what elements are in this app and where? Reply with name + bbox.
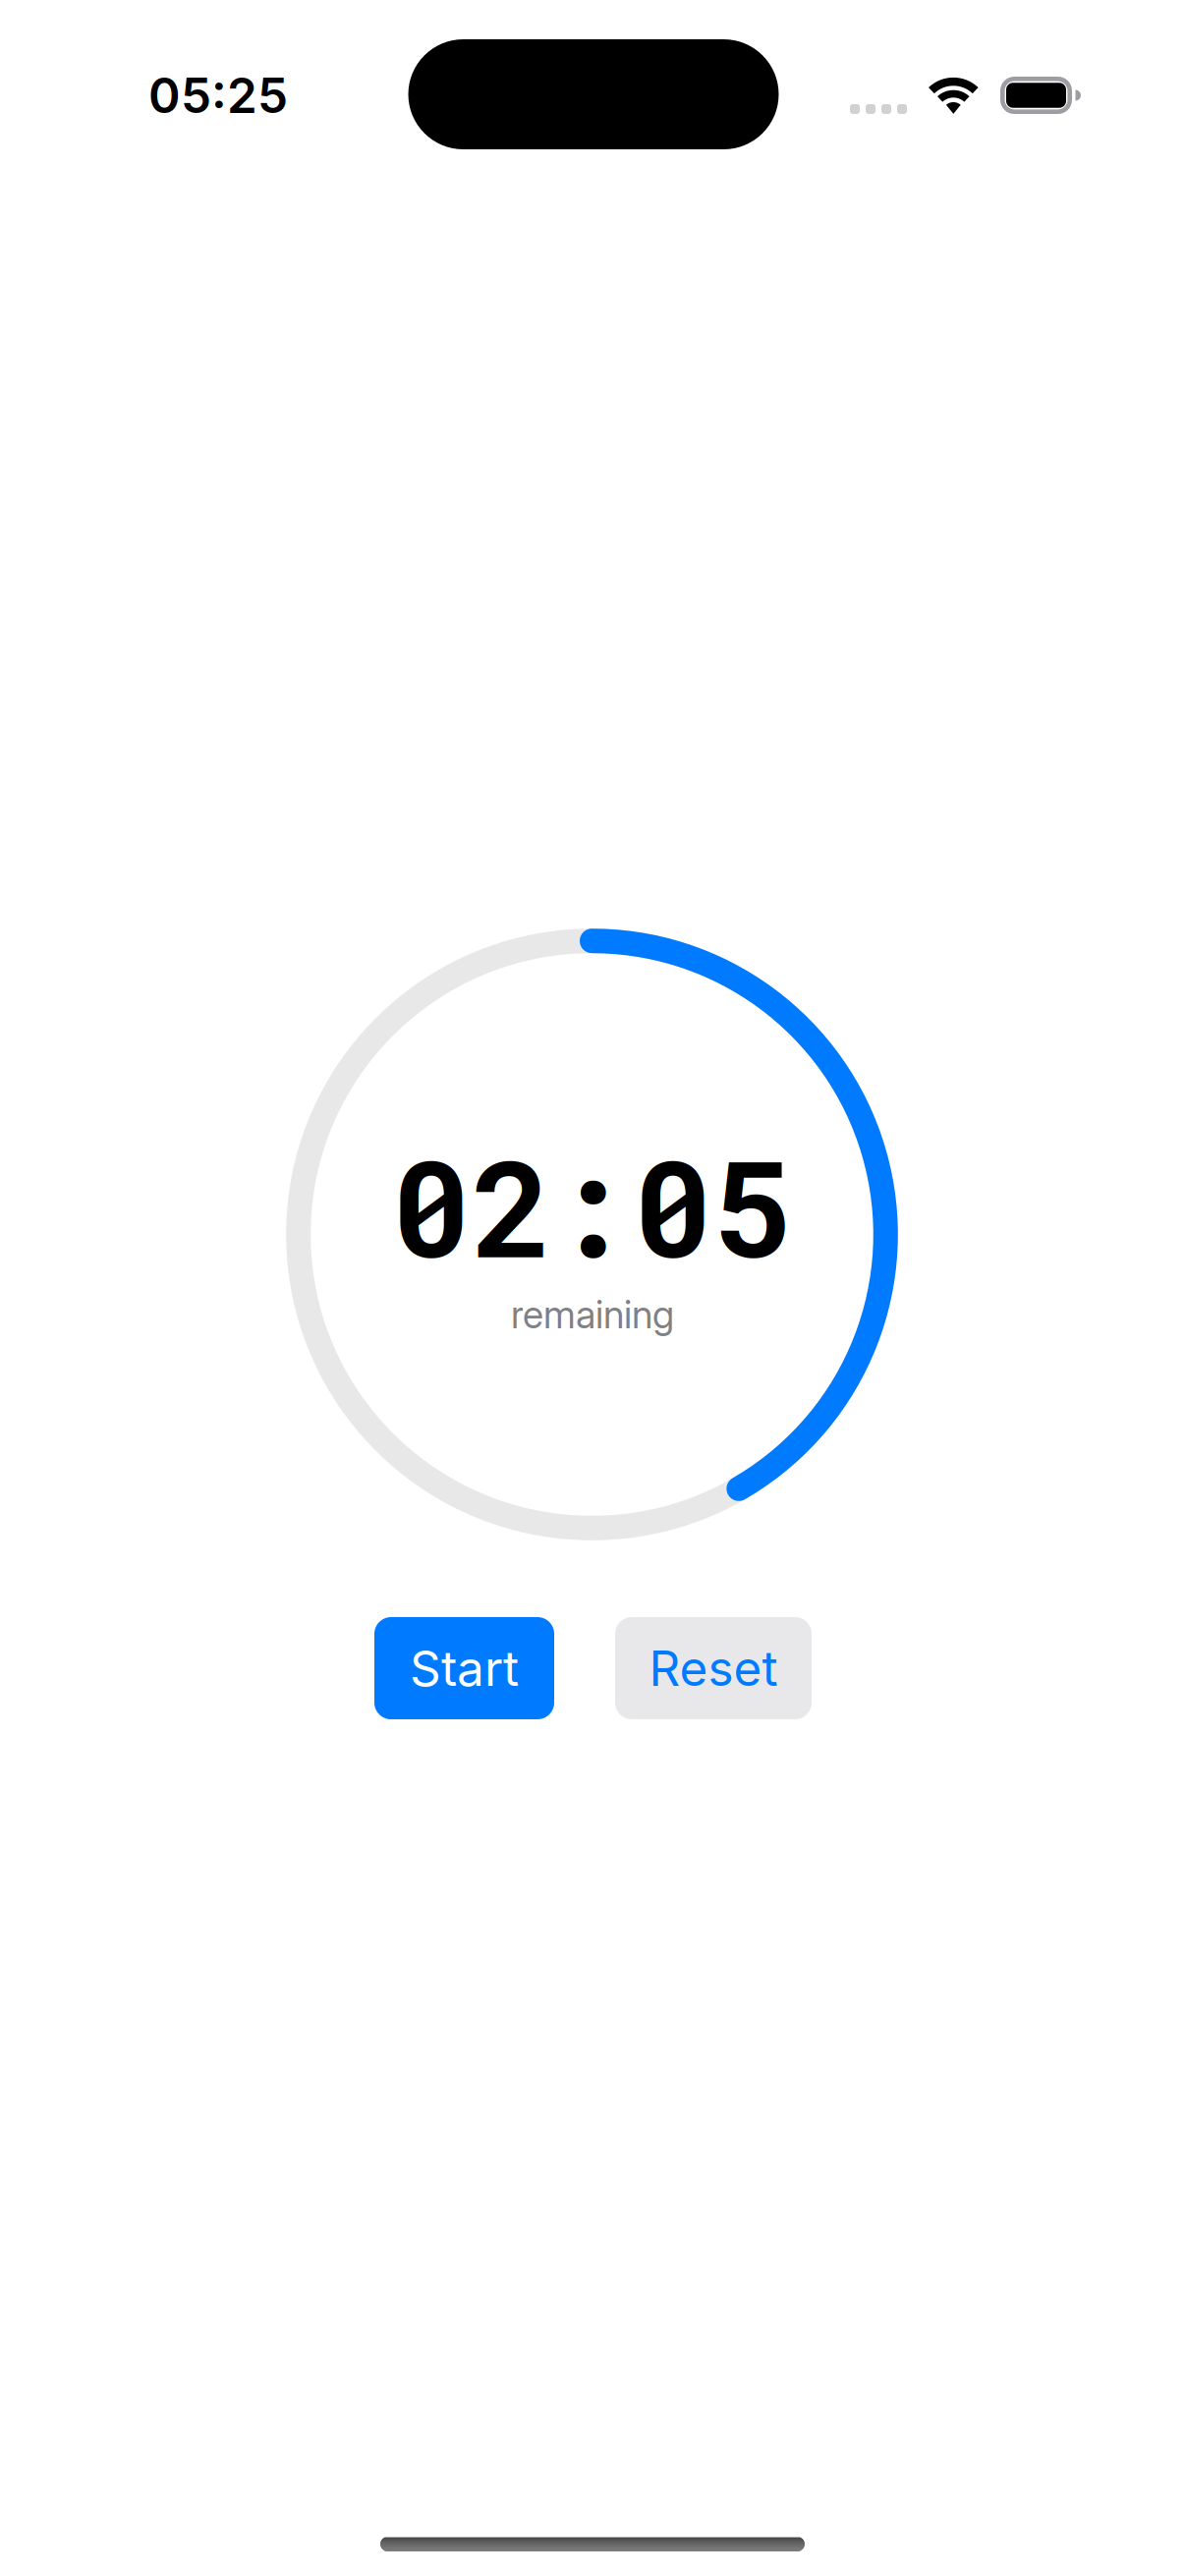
staticText: remaining bbox=[511, 1292, 674, 1338]
staticText: Reset bbox=[649, 1639, 778, 1698]
button[interactable]: Reset bbox=[615, 1617, 812, 1719]
staticText: Start bbox=[410, 1639, 519, 1698]
staticText: 05:25 bbox=[148, 66, 288, 125]
staticText: 02:05 bbox=[391, 1117, 794, 1294]
button[interactable]: Start bbox=[374, 1617, 554, 1719]
